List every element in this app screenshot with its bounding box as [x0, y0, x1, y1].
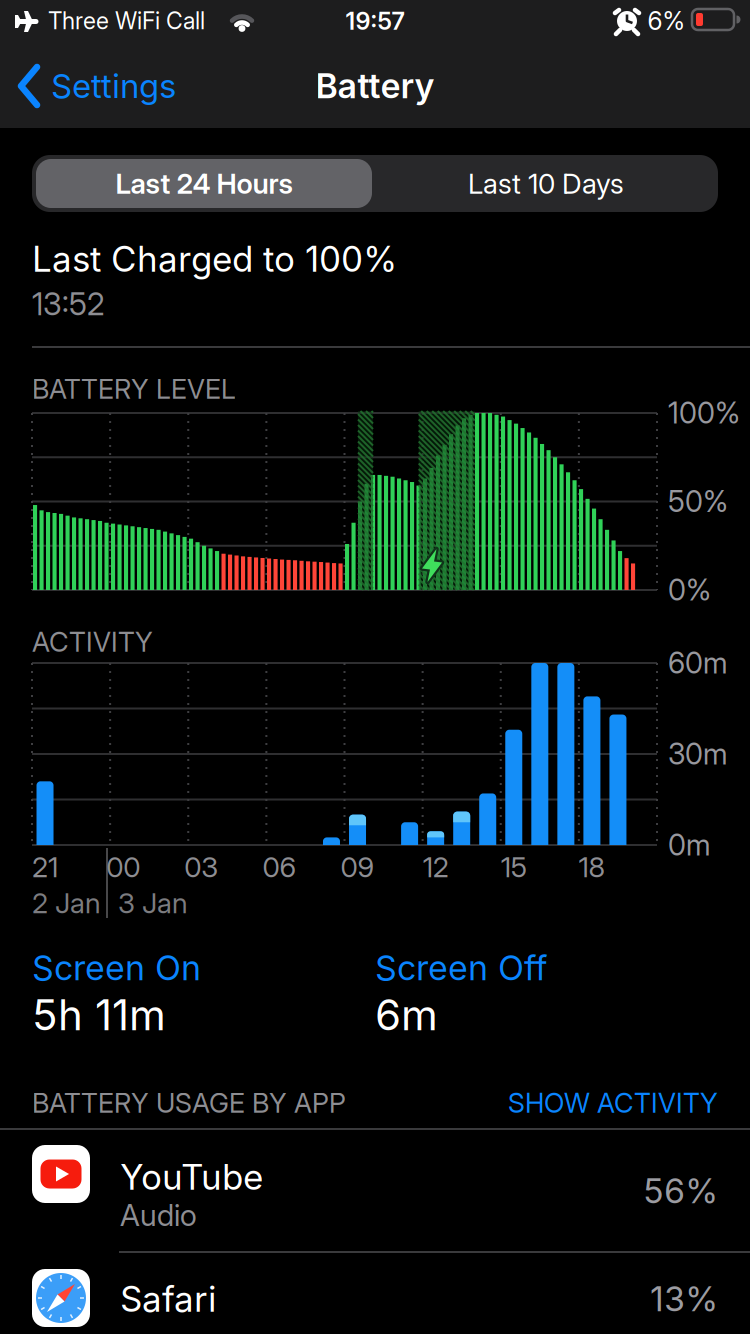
staticText: SHOW ACTIVITY [508, 1087, 718, 1119]
staticText: Screen Off [375, 948, 548, 988]
staticText: 100% [668, 396, 740, 430]
staticText: 06 [262, 850, 296, 883]
button[interactable]: YouTube [0, 1129, 750, 1252]
staticText: 6m [375, 990, 438, 1040]
staticText: 56% [643, 1171, 718, 1211]
button[interactable]: Last 24 Hours [36, 159, 372, 208]
staticText: 00 [106, 850, 140, 883]
button[interactable]: Safari [0, 1253, 750, 1334]
staticText: 09 [340, 850, 374, 883]
staticText: Safari [120, 1278, 216, 1320]
staticText: 0m [668, 828, 711, 862]
button[interactable]: Settings [19, 56, 249, 116]
staticText: 13% [650, 1279, 718, 1319]
staticText: 60m [668, 646, 728, 680]
staticText: 15 [501, 850, 527, 883]
staticText: 3 Jan [118, 886, 188, 919]
staticText: YouTube [120, 1156, 263, 1198]
staticText: 6% [647, 6, 684, 36]
staticText: Screen On [32, 948, 201, 988]
staticText: 21 [32, 850, 58, 883]
staticText: 30m [668, 737, 728, 771]
staticText: Last 10 Days [468, 167, 624, 200]
staticText: 5h 11m [32, 990, 166, 1040]
button[interactable]: Last 10 Days [378, 159, 714, 208]
staticText: ACTIVITY [32, 626, 153, 658]
button[interactable]: SHOW ACTIVITY [418, 1087, 718, 1119]
staticText: 19:57 [345, 7, 404, 35]
staticText: 0% [668, 573, 711, 607]
staticText: Last 24 Hours [115, 167, 292, 200]
staticText: BATTERY USAGE BY APP [32, 1087, 346, 1119]
staticText: Settings [51, 66, 176, 105]
staticText: 13:52 [32, 286, 104, 322]
staticText: 2 Jan [32, 886, 101, 919]
staticText: Last Charged to 100% [32, 238, 397, 280]
staticText: 03 [184, 850, 218, 883]
staticText: 12 [423, 850, 449, 883]
staticText: 50% [668, 484, 728, 519]
staticText: Battery [315, 66, 434, 106]
staticText: Three WiFi Call [48, 7, 205, 34]
staticText: BATTERY LEVEL [32, 373, 236, 405]
staticText: Audio [120, 1197, 197, 1233]
staticText: 18 [578, 850, 605, 883]
